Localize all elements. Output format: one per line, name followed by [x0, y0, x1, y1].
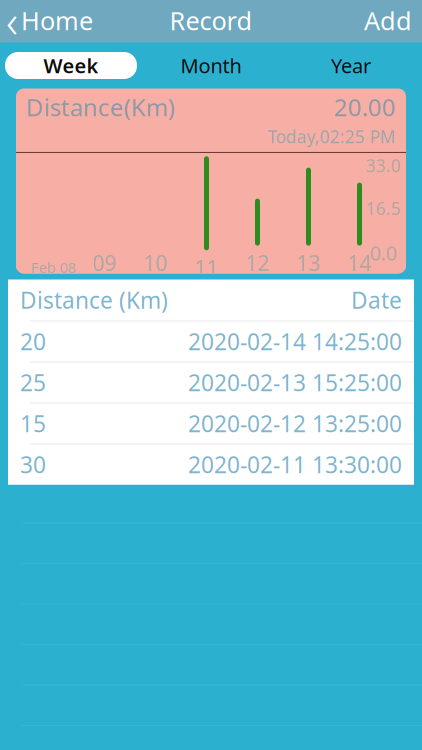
- staticText: Add: [364, 4, 412, 37]
- staticText: 14: [347, 249, 371, 277]
- staticText: 2020-02-11 13:30:00: [188, 449, 402, 479]
- button[interactable]: ‹: [0, 0, 105, 42]
- staticText: Date: [351, 285, 402, 315]
- staticText: 09: [92, 249, 116, 277]
- button[interactable]: Month: [145, 52, 277, 79]
- staticText: 25: [20, 367, 46, 397]
- staticText: 2020-02-13 15:25:00: [188, 367, 402, 397]
- staticText: Week: [43, 52, 98, 79]
- staticText: 12: [245, 249, 269, 277]
- staticText: Month: [180, 52, 241, 79]
- staticText: 30: [20, 449, 46, 479]
- staticText: 10: [143, 249, 167, 277]
- button[interactable]: 30: [8, 443, 414, 484]
- button[interactable]: 15: [8, 402, 414, 443]
- staticText: 13: [296, 249, 320, 277]
- staticText: Today,02:25 PM: [268, 125, 396, 148]
- staticText: ‹: [6, 0, 18, 51]
- staticText: Feb 08: [31, 257, 76, 277]
- staticText: 16.5: [366, 197, 401, 220]
- staticText: 0.0: [370, 239, 397, 266]
- button[interactable]: 25: [8, 361, 414, 402]
- staticText: 11: [194, 253, 218, 282]
- button[interactable]: 20: [8, 320, 414, 361]
- staticText: Year: [331, 52, 371, 79]
- staticText: 33.0: [366, 154, 401, 177]
- button[interactable]: Week: [5, 52, 137, 79]
- staticText: 15: [20, 408, 46, 438]
- staticText: 20: [20, 326, 46, 356]
- staticText: Distance(Km): [26, 91, 175, 123]
- staticText: Distance (Km): [20, 285, 168, 315]
- staticText: 20.00: [334, 91, 396, 123]
- staticText: Home: [21, 4, 93, 37]
- staticText: 2020-02-14 14:25:00: [188, 326, 402, 356]
- button[interactable]: Add: [348, 0, 422, 42]
- staticText: 2020-02-12 13:25:00: [188, 408, 402, 438]
- button[interactable]: Year: [285, 52, 417, 79]
- staticText: Record: [169, 4, 252, 37]
